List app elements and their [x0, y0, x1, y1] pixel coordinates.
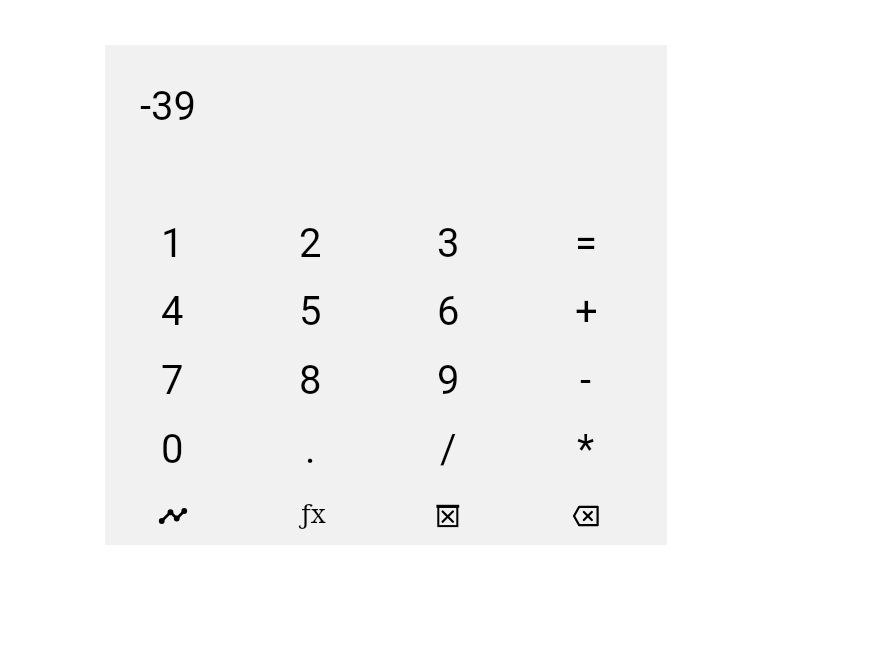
button[interactable]: + — [517, 277, 655, 345]
button[interactable]: * — [517, 415, 655, 483]
button[interactable]: - — [517, 346, 655, 414]
button[interactable]: / — [379, 415, 517, 483]
staticText: = — [575, 220, 597, 267]
button[interactable]: 6 — [379, 277, 517, 345]
staticText: - — [580, 357, 592, 404]
button[interactable]: . — [241, 415, 379, 483]
staticText: 4 — [161, 288, 184, 335]
button[interactable]: 3 — [379, 209, 517, 277]
button[interactable]: 1 — [103, 209, 241, 277]
button[interactable] — [517, 482, 655, 550]
staticText: 7 — [161, 357, 184, 404]
button[interactable]: 9 — [379, 346, 517, 414]
button[interactable] — [103, 482, 241, 550]
button[interactable]: 8 — [241, 346, 379, 414]
button[interactable]: 7 — [103, 346, 241, 414]
staticText: 9 — [437, 357, 460, 404]
button[interactable]: 5 — [241, 277, 379, 345]
staticText: . — [305, 426, 316, 473]
button[interactable]: = — [517, 209, 655, 277]
staticText: 2 — [299, 220, 322, 267]
staticText: / — [440, 426, 457, 473]
button[interactable]: 0 — [103, 415, 241, 483]
staticText: 1 — [161, 220, 184, 267]
staticText: 5 — [299, 288, 322, 335]
staticText: * — [577, 426, 595, 473]
button[interactable] — [379, 482, 517, 550]
staticText: 3 — [437, 220, 460, 267]
button[interactable]: 4 — [103, 277, 241, 345]
staticText: -39 — [140, 83, 197, 130]
staticText: ƒx — [299, 495, 326, 530]
staticText: 8 — [299, 357, 322, 404]
button[interactable]: 2 — [241, 209, 379, 277]
staticText: 0 — [161, 426, 184, 473]
button[interactable]: ƒx — [243, 478, 381, 546]
staticText: + — [575, 288, 598, 335]
staticText: 6 — [437, 288, 460, 335]
